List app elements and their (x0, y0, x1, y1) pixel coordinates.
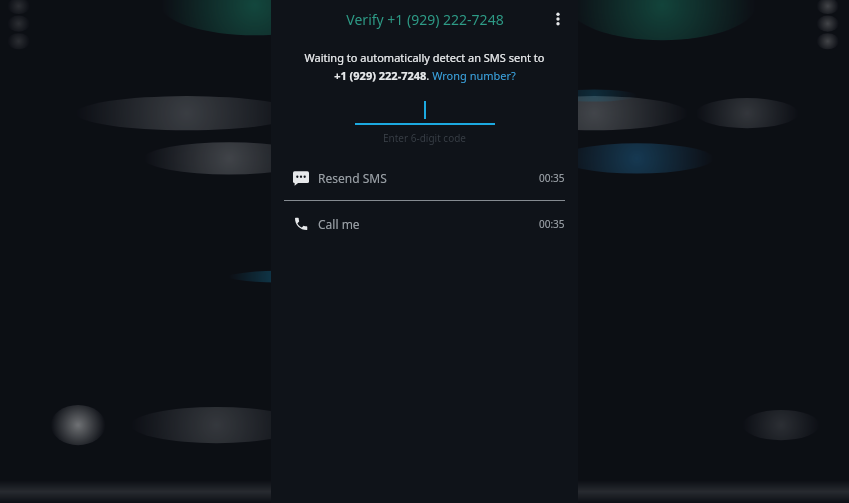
staticText: Call me (318, 216, 360, 232)
button[interactable]: More options (544, 5, 572, 33)
staticText: Waiting to automatically detect an SMS s… (271, 50, 578, 65)
button[interactable]: Call me (271, 201, 578, 246)
staticText: 00:35 (539, 171, 565, 185)
staticText: Verify +1 (929) 222-7248 (346, 10, 504, 29)
staticText: Enter 6-digit code (271, 131, 578, 145)
button[interactable]: +1 (929) 222-7248. Wrong number? (271, 68, 578, 83)
staticText: 00:35 (539, 217, 565, 231)
button[interactable]: Enter 6-digit code (355, 99, 495, 125)
staticText: Resend SMS (318, 170, 387, 186)
staticText: +1 (929) 222-7248. Wrong number? (334, 68, 516, 83)
button[interactable]: Resend SMS (271, 155, 578, 200)
